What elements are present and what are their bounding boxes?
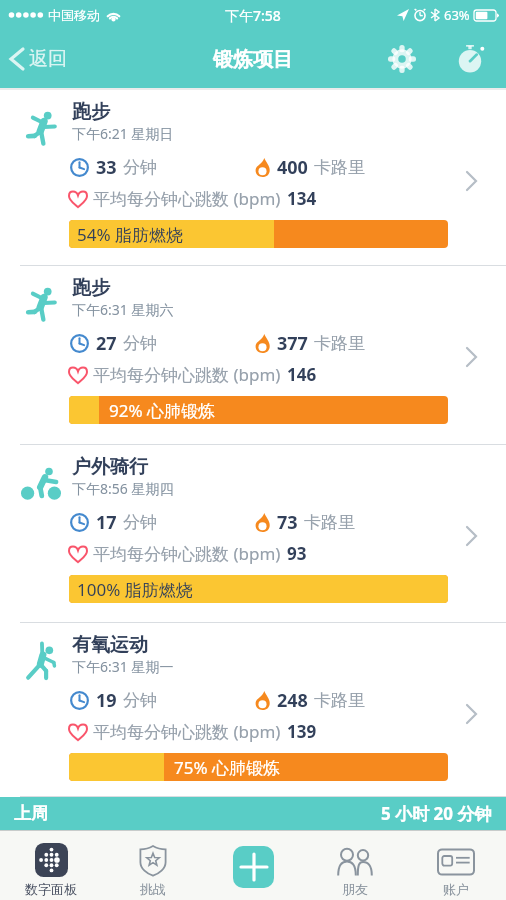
staticText: 分钟 xyxy=(123,333,157,354)
button[interactable]: 数字面板 xyxy=(0,831,102,900)
staticText: 400 xyxy=(277,155,308,180)
staticText: 分钟 xyxy=(123,157,157,178)
button[interactable]: 有氧运动 xyxy=(0,623,506,797)
button[interactable]: 返回 xyxy=(10,47,67,71)
staticText: 卡路里 xyxy=(314,157,365,178)
staticText: 挑战 xyxy=(140,881,166,897)
staticText: 下午6:21 星期日 xyxy=(72,124,174,143)
staticText: 377 xyxy=(277,331,308,356)
staticText: 248 xyxy=(277,688,308,713)
staticText: 54% 脂肪燃烧 xyxy=(77,223,183,246)
staticText: 卡路里 xyxy=(314,333,365,354)
staticText: 17 xyxy=(96,510,117,535)
staticText: 平均每分钟心跳数 (bpm) xyxy=(93,363,281,386)
staticText: 139 xyxy=(287,720,317,743)
staticText: 73 xyxy=(277,510,298,535)
staticText: 63% xyxy=(444,6,470,24)
staticText: 有氧运动 xyxy=(72,633,148,657)
button[interactable] xyxy=(203,831,304,900)
staticText: 朋友 xyxy=(342,881,368,897)
button[interactable]: 户外骑行 xyxy=(0,445,506,623)
staticText: 平均每分钟心跳数 (bpm) xyxy=(93,720,281,743)
staticText: 平均每分钟心跳数 (bpm) xyxy=(93,542,281,565)
staticText: 93 xyxy=(287,542,307,565)
staticText: 跑步 xyxy=(72,276,110,300)
staticText: 33 xyxy=(96,155,117,180)
button[interactable] xyxy=(456,45,484,73)
button[interactable]: 跑步 xyxy=(0,90,506,266)
staticText: 卡路里 xyxy=(314,690,365,711)
staticText: 下午6:31 星期一 xyxy=(72,657,174,676)
staticText: 中国移动 xyxy=(48,7,100,23)
staticText: 户外骑行 xyxy=(72,455,148,479)
button[interactable]: 朋友 xyxy=(304,831,405,900)
staticText: 分钟 xyxy=(123,690,157,711)
staticText: 146 xyxy=(287,363,317,386)
button[interactable] xyxy=(388,45,416,73)
staticText: 平均每分钟心跳数 (bpm) xyxy=(93,187,281,210)
button[interactable]: 跑步 xyxy=(0,266,506,445)
staticText: 下午6:31 星期六 xyxy=(72,300,174,319)
button[interactable]: 挑战 xyxy=(102,831,203,900)
staticText: 返回 xyxy=(29,47,67,71)
staticText: 19 xyxy=(96,688,117,713)
staticText: 卡路里 xyxy=(304,512,355,533)
staticText: 分钟 xyxy=(123,512,157,533)
staticText: 27 xyxy=(96,331,117,356)
staticText: 下午7:58 xyxy=(225,6,281,25)
staticText: 134 xyxy=(287,187,317,210)
staticText: 下午8:56 星期四 xyxy=(72,479,174,498)
staticText: 上周 xyxy=(14,803,48,824)
staticText: 5 小时 20 分钟 xyxy=(381,802,492,825)
staticText: 100% 脂肪燃烧 xyxy=(77,578,193,601)
staticText: 锻炼项目 xyxy=(213,47,293,72)
staticText: 75% 心肺锻炼 xyxy=(174,756,280,779)
staticText: 跑步 xyxy=(72,100,110,124)
staticText: 数字面板 xyxy=(25,881,77,897)
button[interactable]: 账户 xyxy=(405,831,506,900)
staticText: 92% 心肺锻炼 xyxy=(109,399,215,422)
staticText: 账户 xyxy=(443,881,469,897)
